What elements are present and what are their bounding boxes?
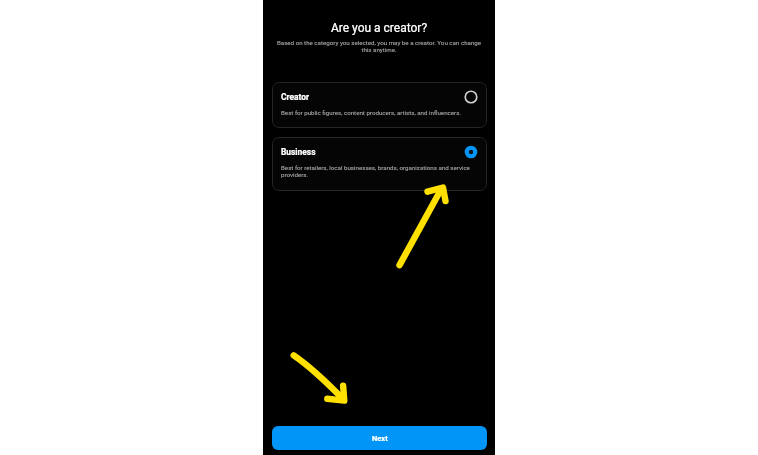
staticText: Best for retailers, local businesses, br… [281, 164, 478, 179]
staticText: Best for public figures, content produce… [281, 109, 461, 116]
button[interactable]: Next [272, 426, 487, 450]
staticText: Business [281, 147, 316, 157]
staticText: Next [372, 434, 388, 443]
button[interactable]: Business, selected [464, 145, 478, 159]
button[interactable]: Business [272, 137, 487, 191]
button[interactable]: Creator, not selected [464, 90, 478, 104]
staticText: Are you a creator? [263, 21, 495, 35]
button[interactable]: Creator [272, 82, 487, 128]
staticText: Creator [281, 92, 310, 102]
staticText: Based on the category you selected, you … [273, 39, 485, 54]
